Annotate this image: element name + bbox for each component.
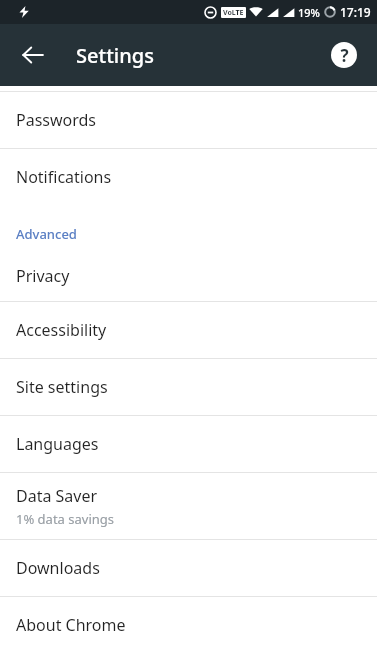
button[interactable]: Site settings bbox=[0, 359, 377, 415]
staticText: Downloads bbox=[16, 557, 100, 579]
staticText: Passwords bbox=[16, 109, 97, 131]
staticText: ? bbox=[340, 44, 349, 67]
button[interactable]: Downloads bbox=[0, 540, 377, 596]
staticText: Notifications bbox=[16, 166, 112, 188]
staticText: Data Saver bbox=[16, 485, 98, 507]
staticText: Settings bbox=[76, 42, 154, 69]
staticText: Privacy bbox=[16, 265, 70, 287]
staticText: Site settings bbox=[16, 376, 108, 398]
button[interactable]: Data Saver bbox=[0, 473, 377, 539]
button[interactable]: Privacy bbox=[0, 251, 377, 301]
staticText: About Chrome bbox=[16, 614, 126, 636]
staticText: Advanced bbox=[16, 225, 77, 243]
button[interactable]: Accessibility bbox=[0, 302, 377, 358]
button[interactable]: About Chrome bbox=[0, 597, 377, 653]
button[interactable]: Help bbox=[324, 35, 364, 75]
button[interactable]: Passwords bbox=[0, 92, 377, 148]
staticText: VoLTE bbox=[223, 8, 244, 18]
button[interactable]: Languages bbox=[0, 416, 377, 472]
staticText: Languages bbox=[16, 433, 99, 455]
staticText: 19% bbox=[298, 5, 320, 20]
staticText: 17:19 bbox=[340, 4, 371, 20]
button[interactable]: Notifications bbox=[0, 149, 377, 205]
staticText: 1% data savings bbox=[16, 510, 115, 528]
staticText: Accessibility bbox=[16, 319, 107, 341]
button[interactable]: Back bbox=[12, 34, 54, 76]
